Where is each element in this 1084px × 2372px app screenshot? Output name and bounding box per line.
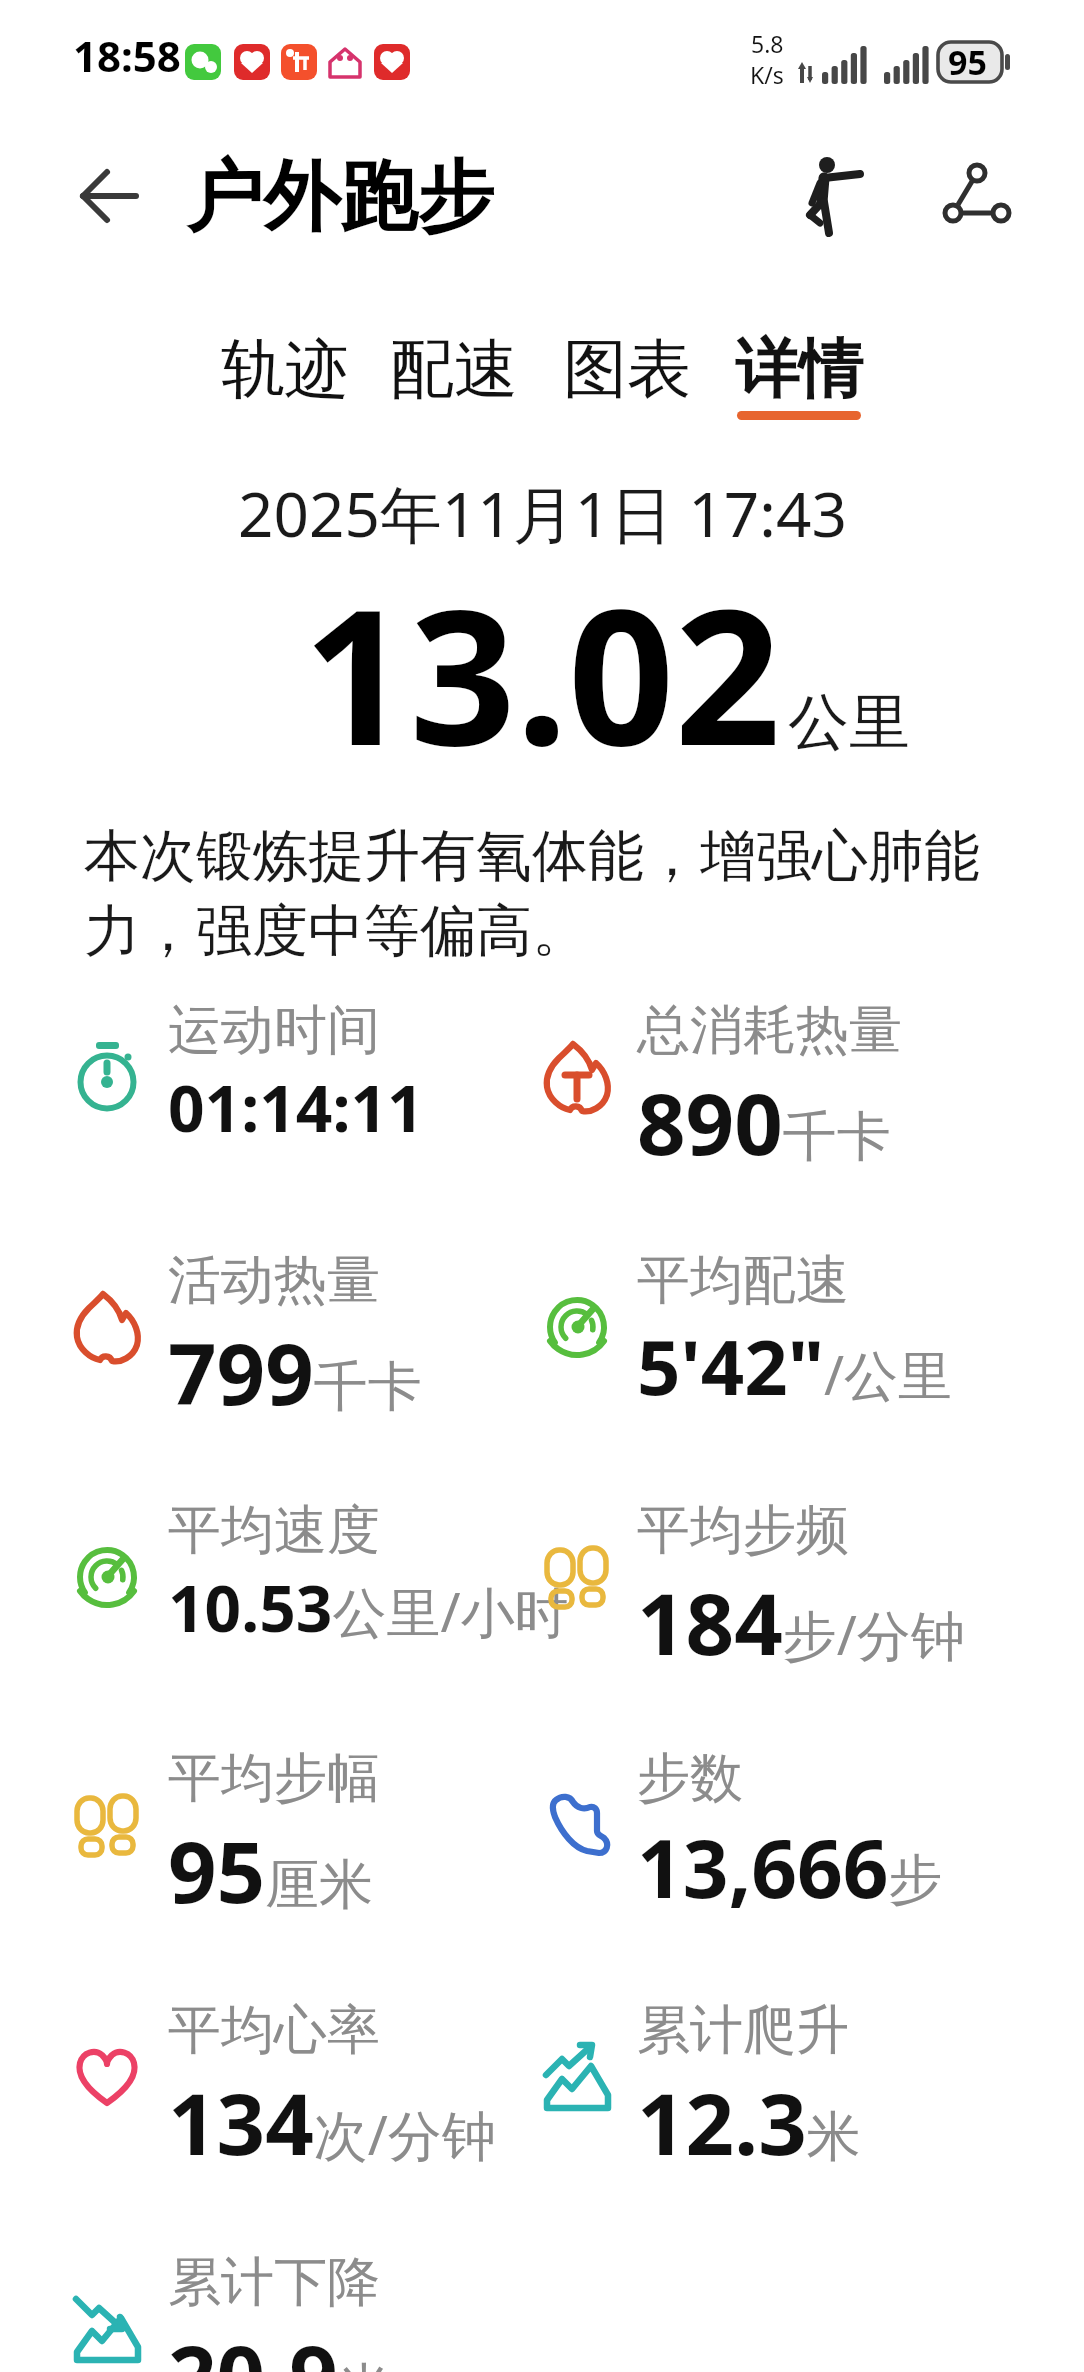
staticText: 活动热量 [168,1247,380,1314]
staticText: 配速 [390,329,518,410]
staticText: 5.8 [751,28,784,59]
staticText: 134次/分钟 [168,2064,496,2180]
staticText: 95 [948,39,987,85]
staticText: 平均步幅 [168,1745,380,1812]
staticText: 13,666步 [637,1812,943,1921]
staticText: 总消耗热量 [637,997,902,1064]
staticText: K/s [750,59,784,90]
staticText: 公里 [788,684,910,761]
button[interactable] [798,145,878,240]
staticText: 95厘米 [168,1812,374,1928]
staticText: 图表 [563,329,691,410]
staticText: 799千卡 [168,1314,422,1430]
staticText: 平均速度 [168,1497,380,1564]
staticText: 本次锻炼提升有氧体能，增强心肺能 力，强度中等偏高。 [84,821,980,967]
staticText: 步数 [637,1745,743,1812]
staticText: 平均心率 [168,1997,380,2064]
staticText: 13.02 [303,546,781,799]
button[interactable]: 详情 [714,329,884,429]
staticText: 平均步频 [637,1497,849,1564]
staticText: 10.53公里/小时 [168,1564,569,1651]
staticText: 12.3米 [637,2064,861,2180]
staticText: 户外跑步 [186,149,494,246]
staticText: 20.9米 [168,2316,392,2372]
staticText: 累计下降 [168,2249,380,2316]
staticText: 累计爬升 [637,1997,849,2064]
staticText: 18:58 [73,27,181,84]
staticText: 5'42"/公里 [637,1314,953,1418]
staticText: 01:14:11 [168,1064,424,1151]
staticText: 890千卡 [637,1064,891,1180]
staticText: 2025年11月1日 17:43 [238,471,847,556]
button[interactable]: 配速 [369,329,539,429]
button[interactable]: 轨迹 [200,329,370,429]
staticText: 184步/分钟 [637,1564,965,1680]
staticText: 轨迹 [221,329,349,410]
button[interactable]: 图表 [542,329,712,429]
staticText: 详情 [735,329,863,410]
staticText: 运动时间 [168,997,380,1064]
button[interactable] [66,160,146,240]
staticText: 平均配速 [637,1247,849,1314]
button[interactable] [936,155,1020,239]
